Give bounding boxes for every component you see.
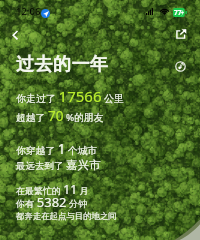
button[interactable]: Back xyxy=(3,23,27,47)
staticText: 你走过了 17566 公里 xyxy=(16,86,125,106)
staticText: 都奔走在起点与目的地之间 xyxy=(16,211,117,222)
button[interactable]: Music xyxy=(171,57,190,76)
staticText: 超越了 70 %的朋友 xyxy=(16,107,104,125)
staticText: 你穿越了 1 个城市 xyxy=(16,140,98,158)
staticText: 过去的一年 xyxy=(16,53,108,76)
staticText: 77 xyxy=(174,8,182,17)
staticText: 12:06 xyxy=(16,5,41,18)
button[interactable]: Share xyxy=(170,24,192,46)
staticText: 最远去到了 嘉兴市 xyxy=(16,158,101,172)
staticText: 在最繁忙的 11 月 xyxy=(16,181,89,197)
staticText: 你有 5382 分钟 xyxy=(16,193,88,211)
